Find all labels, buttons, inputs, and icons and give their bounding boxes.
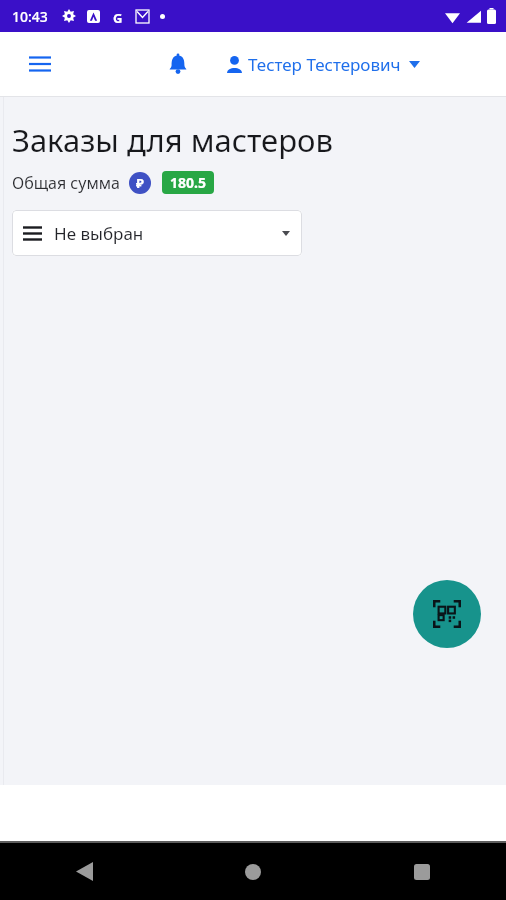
button[interactable]: Главный экран [168,843,337,900]
button[interactable]: Меню [20,44,60,84]
staticText: Заказы для мастеров [12,119,333,161]
button[interactable]: Сканировать QR-код [413,580,481,648]
button[interactable]: Назад [0,843,168,900]
staticText: G [113,9,123,23]
staticText: 10:43 [12,7,48,26]
button[interactable]: Тестер Тестерович [222,47,424,82]
staticText: Тестер Тестерович [248,53,401,76]
button[interactable]: Недавние приложения [337,843,506,900]
button[interactable]: Не выбран [12,210,302,256]
staticText: Не выбран [54,222,144,245]
staticText: ₽ [136,174,144,192]
button[interactable]: Уведомления [158,44,198,84]
staticText: Общая сумма [12,172,120,194]
staticText: 180.5 [170,173,206,192]
